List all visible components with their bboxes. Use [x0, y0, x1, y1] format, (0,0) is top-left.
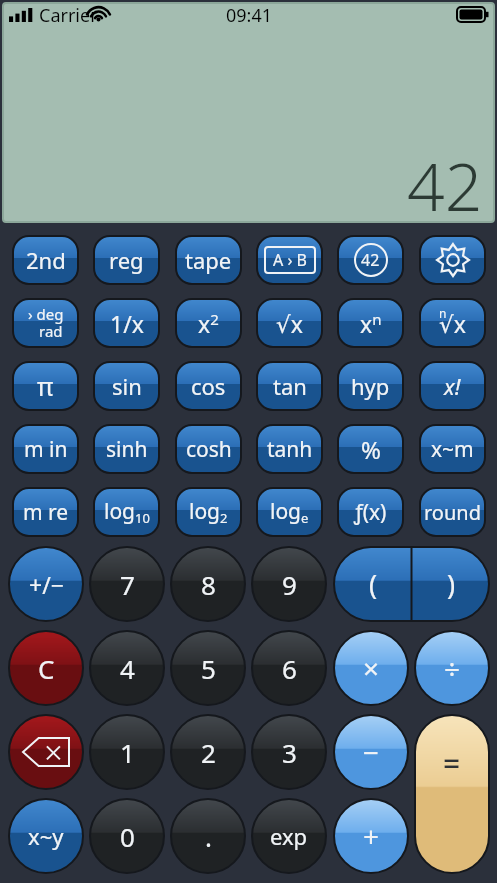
staticText: log2 [189, 497, 228, 527]
button[interactable]: tape [176, 236, 241, 284]
button[interactable]: ƒ(x) [338, 488, 403, 536]
button[interactable]: m re [13, 488, 78, 536]
staticText: x2 [198, 308, 219, 339]
staticText: A › B [273, 249, 307, 271]
button[interactable]: sin [94, 362, 159, 410]
button[interactable]: Answer 42 [338, 236, 403, 284]
button[interactable]: n [420, 299, 485, 347]
button[interactable]: √x [257, 299, 322, 347]
button[interactable]: + [334, 799, 408, 873]
staticText: 1/x [110, 308, 144, 339]
staticText: sin [112, 371, 142, 401]
button[interactable]: log2 [176, 488, 241, 536]
staticText: Carrier [39, 3, 98, 28]
staticText: + [363, 817, 380, 855]
button[interactable]: 0 [90, 799, 164, 873]
button[interactable]: log10 [94, 488, 159, 536]
button[interactable]: ( [334, 547, 412, 621]
button[interactable]: tan [257, 362, 322, 410]
button[interactable]: xn [338, 299, 403, 347]
staticText: hyp [351, 371, 390, 401]
button[interactable]: +/− [9, 547, 83, 621]
staticText: round [424, 499, 481, 526]
staticText: cos [191, 371, 226, 401]
button[interactable]: exp [252, 799, 326, 873]
button[interactable]: hyp [338, 362, 403, 410]
staticText: ( [369, 566, 378, 603]
staticText: sinh [106, 435, 148, 464]
button[interactable]: − [334, 715, 408, 789]
staticText: tan [273, 371, 307, 401]
button[interactable]: 7 [90, 547, 164, 621]
staticText: − [363, 733, 380, 771]
staticText: +/− [29, 569, 64, 600]
staticText: loge [270, 497, 309, 527]
staticText: 4 [120, 651, 135, 686]
button[interactable]: cos [176, 362, 241, 410]
button[interactable]: loge [257, 488, 322, 536]
button[interactable]: reg [94, 236, 159, 284]
button[interactable]: 2nd [13, 236, 78, 284]
button[interactable]: x~y [9, 799, 83, 873]
staticText: xn [360, 308, 382, 339]
button[interactable]: ÷ [415, 631, 489, 705]
button[interactable]: Settings [420, 236, 485, 284]
staticText: ) [447, 566, 456, 603]
staticText: 0 [120, 819, 135, 854]
button[interactable]: 6 [252, 631, 326, 705]
button[interactable]: = [415, 715, 489, 873]
button[interactable]: › deg [13, 299, 78, 347]
button[interactable]: C [9, 631, 83, 705]
button[interactable]: % [338, 425, 403, 473]
staticText: √x [276, 308, 303, 339]
staticText: √x [439, 308, 466, 339]
button[interactable]: x2 [176, 299, 241, 347]
staticText: 09:41 [226, 3, 273, 28]
button[interactable]: 4 [90, 631, 164, 705]
button[interactable]: round [420, 488, 485, 536]
staticText: × [363, 649, 380, 687]
staticText: 7 [120, 567, 135, 602]
staticText: log10 [104, 497, 150, 527]
staticText: ÷ [444, 649, 461, 687]
button[interactable]: 3 [252, 715, 326, 789]
button[interactable]: 9 [252, 547, 326, 621]
staticText: x~m [431, 435, 474, 464]
staticText: reg [109, 245, 144, 275]
staticText: C [38, 651, 55, 686]
staticText: 1 [120, 735, 135, 770]
button[interactable]: m in [13, 425, 78, 473]
button[interactable]: cosh [176, 425, 241, 473]
button[interactable]: π [13, 362, 78, 410]
button[interactable]: x~m [420, 425, 485, 473]
staticText: rad [39, 321, 63, 341]
staticText: 8 [201, 567, 216, 602]
staticText: % [361, 433, 381, 466]
staticText: exp [270, 821, 308, 851]
button[interactable]: × [334, 631, 408, 705]
button[interactable]: . [171, 799, 245, 873]
button[interactable]: 2 [171, 715, 245, 789]
button[interactable]: ) [412, 547, 489, 621]
button[interactable]: 5 [171, 631, 245, 705]
button[interactable]: x! [420, 362, 485, 410]
button[interactable]: tanh [257, 425, 322, 473]
staticText: x~y [28, 821, 64, 851]
button[interactable]: 1/x [94, 299, 159, 347]
button[interactable]: 1 [90, 715, 164, 789]
staticText: 6 [282, 651, 297, 686]
button[interactable]: Delete [9, 715, 83, 789]
staticText: tanh [267, 435, 313, 464]
button[interactable]: A to B [257, 236, 322, 284]
staticText: 9 [282, 567, 297, 602]
staticText: 2 [201, 735, 216, 770]
staticText: π [37, 369, 54, 403]
staticText: cosh [186, 435, 232, 464]
staticText: m re [23, 498, 69, 527]
button[interactable]: sinh [94, 425, 159, 473]
staticText: 2nd [26, 245, 66, 275]
staticText: 5 [201, 651, 216, 686]
button[interactable]: 8 [171, 547, 245, 621]
staticText: 42 [361, 249, 380, 271]
staticText: m in [24, 435, 68, 464]
